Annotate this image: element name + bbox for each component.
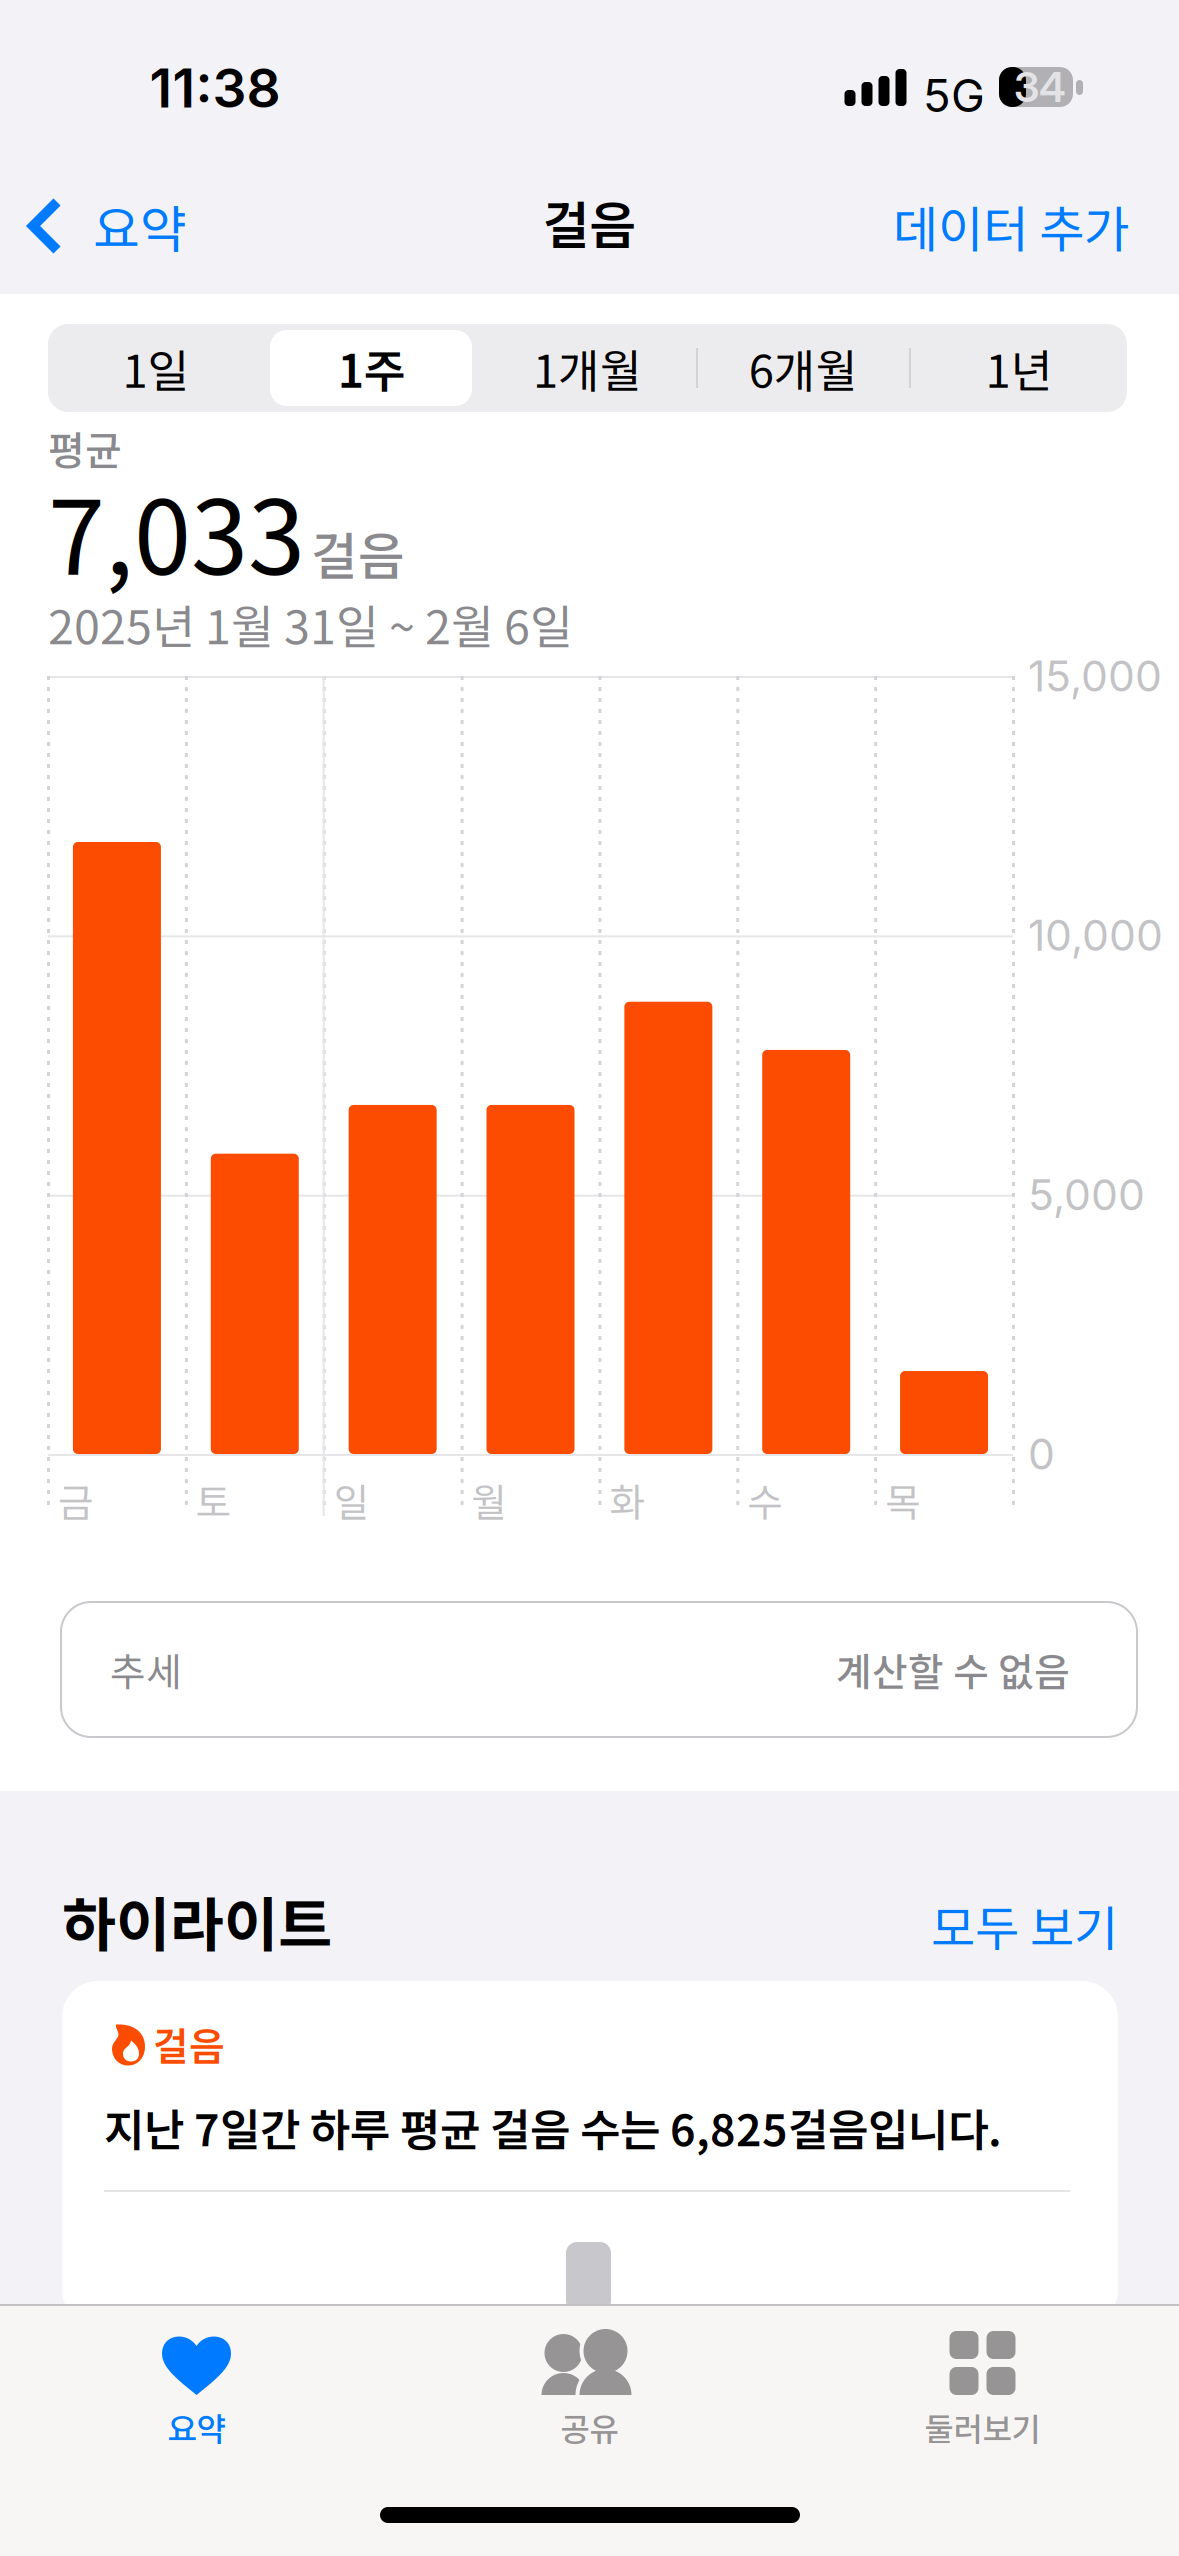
staticText: 데이터 추가 bbox=[893, 190, 1129, 262]
staticText: 평균 bbox=[48, 419, 122, 477]
staticText: 하이라이트 bbox=[62, 1878, 332, 1963]
staticText: 요약 bbox=[93, 189, 187, 263]
staticText: 6개월 bbox=[749, 335, 858, 401]
staticText: 걸음 bbox=[542, 185, 636, 259]
staticText: 목 bbox=[885, 1472, 921, 1528]
staticText: 모두 보기 bbox=[931, 1890, 1118, 1960]
button[interactable]: 1일 bbox=[48, 324, 264, 412]
staticText: 7,033 bbox=[48, 456, 305, 604]
button[interactable]: 데이터 추가 bbox=[849, 174, 1179, 278]
button[interactable]: 요약 bbox=[0, 2331, 393, 2471]
staticText: 5G bbox=[923, 68, 985, 123]
staticText: 10,000 bbox=[1028, 909, 1163, 961]
staticText: 화 bbox=[609, 1472, 645, 1528]
staticText: 월 bbox=[472, 1472, 508, 1528]
staticText: 5,000 bbox=[1028, 1169, 1145, 1220]
staticText: 11:38 bbox=[149, 56, 280, 120]
staticText: 추세 bbox=[110, 1641, 182, 1697]
staticText: 0 bbox=[1028, 1428, 1055, 1480]
staticText: 1개월 bbox=[533, 335, 642, 401]
staticText: 공유 bbox=[560, 2404, 618, 2450]
button[interactable]: 공유 bbox=[393, 2331, 786, 2471]
button[interactable]: 1년 bbox=[911, 324, 1127, 412]
staticText: 둘러보기 bbox=[924, 2404, 1040, 2450]
button[interactable]: 둘러보기 bbox=[786, 2331, 1179, 2471]
staticText: 걸음 bbox=[153, 2016, 225, 2072]
button[interactable]: 1주 bbox=[264, 324, 480, 412]
staticText: 2025년 1월 31일 ~ 2월 6일 bbox=[48, 590, 573, 658]
staticText: 요약 bbox=[167, 2404, 225, 2450]
staticText: 금 bbox=[58, 1472, 94, 1528]
staticText: 일 bbox=[334, 1472, 370, 1528]
staticText: 수 bbox=[747, 1472, 783, 1528]
button[interactable]: 추세 bbox=[61, 1602, 1137, 1737]
staticText: 15,000 bbox=[1028, 650, 1162, 702]
staticText: 토 bbox=[196, 1472, 232, 1528]
staticText: 1년 bbox=[986, 335, 1053, 401]
button[interactable]: 1개월 bbox=[480, 324, 695, 412]
staticText: 계산할 수 없음 bbox=[836, 1641, 1070, 1697]
button[interactable]: 요약 bbox=[0, 174, 208, 278]
button[interactable]: 모두 보기 bbox=[918, 1890, 1118, 1960]
staticText: 걸음 bbox=[311, 516, 405, 589]
staticText: 지난 7일간 하루 평균 걸음 수는 6,825걸음입니다. bbox=[104, 2095, 1002, 2159]
button[interactable]: 6개월 bbox=[695, 324, 911, 412]
staticText: 34 bbox=[1014, 62, 1066, 112]
staticText: 1주 bbox=[338, 335, 406, 401]
staticText: 1일 bbox=[122, 335, 189, 401]
